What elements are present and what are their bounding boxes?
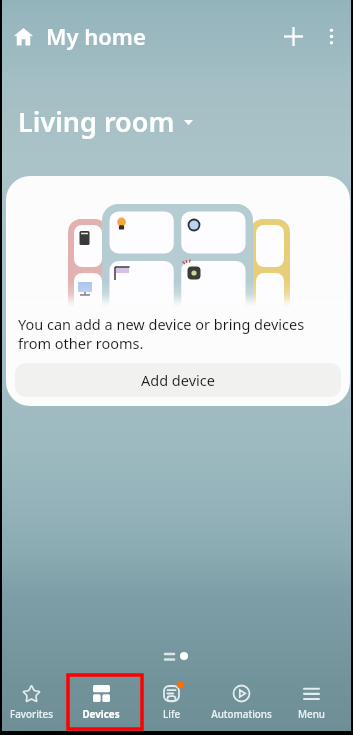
staticText: Menu bbox=[298, 708, 325, 721]
staticText: Automations bbox=[211, 708, 272, 721]
staticText: Add device bbox=[141, 370, 215, 390]
button[interactable]: Add device bbox=[15, 363, 341, 397]
staticText: Devices bbox=[82, 708, 120, 721]
button[interactable]: Living room bbox=[14, 99, 197, 144]
button[interactable]: My home bbox=[12, 17, 148, 55]
button[interactable]: More options bbox=[313, 18, 349, 54]
button[interactable]: Menu bbox=[276, 675, 346, 731]
button[interactable]: Life bbox=[136, 675, 206, 731]
button[interactable]: Automations bbox=[206, 675, 276, 731]
button[interactable]: Favorites bbox=[0, 675, 66, 731]
staticText: Life bbox=[163, 708, 180, 721]
button[interactable]: Add device bbox=[275, 18, 311, 54]
staticText: My home bbox=[46, 21, 146, 51]
staticText: Living room bbox=[18, 103, 175, 140]
button[interactable]: Devices bbox=[66, 675, 136, 731]
staticText: Favorites bbox=[10, 708, 53, 721]
staticText: You can add a new device or bring device… bbox=[18, 314, 338, 353]
